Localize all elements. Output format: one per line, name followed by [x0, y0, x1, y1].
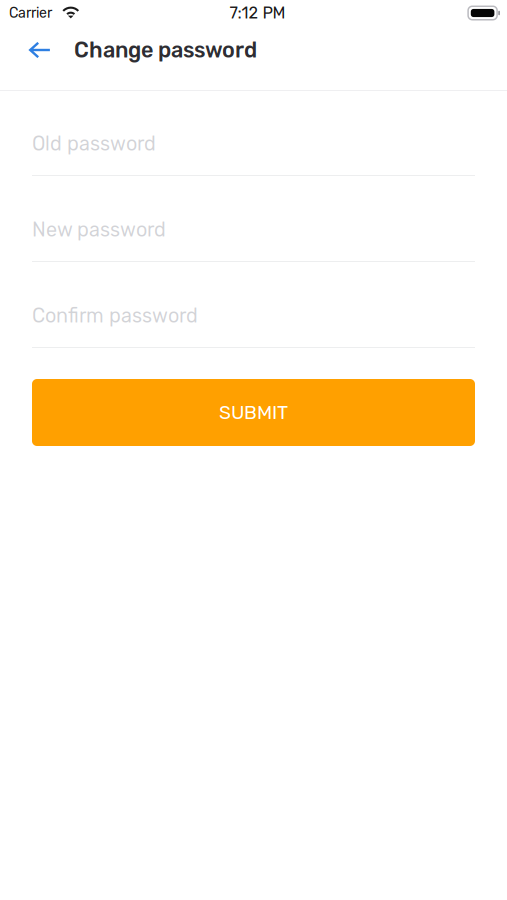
staticText: SUBMIT — [219, 401, 288, 424]
staticText: Old password — [32, 132, 156, 155]
staticText: Confirm password — [32, 304, 198, 327]
button[interactable]: Back — [0, 34, 74, 66]
staticText: 7:12 PM — [229, 3, 285, 23]
staticText: New password — [32, 218, 166, 241]
button[interactable]: SUBMIT — [32, 379, 475, 446]
staticText: Change password — [74, 37, 257, 63]
staticText: Carrier — [9, 5, 52, 21]
